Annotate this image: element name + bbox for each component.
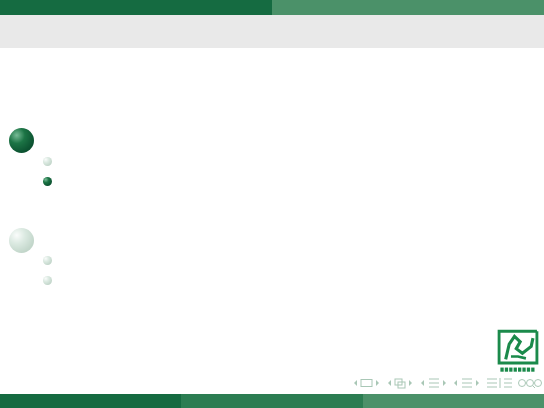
button[interactable]: Bullet <box>43 177 52 186</box>
button[interactable]: Sub bullet <box>43 256 52 265</box>
button[interactable]: Sub bullet <box>9 228 34 253</box>
button[interactable]: Bullet <box>9 128 34 153</box>
button[interactable]: Sub bullet <box>43 276 52 285</box>
button[interactable]: Sub bullet <box>43 157 52 166</box>
button[interactable]: Perseus logo <box>496 328 540 374</box>
button[interactable]: View controls toolbar <box>350 376 542 390</box>
